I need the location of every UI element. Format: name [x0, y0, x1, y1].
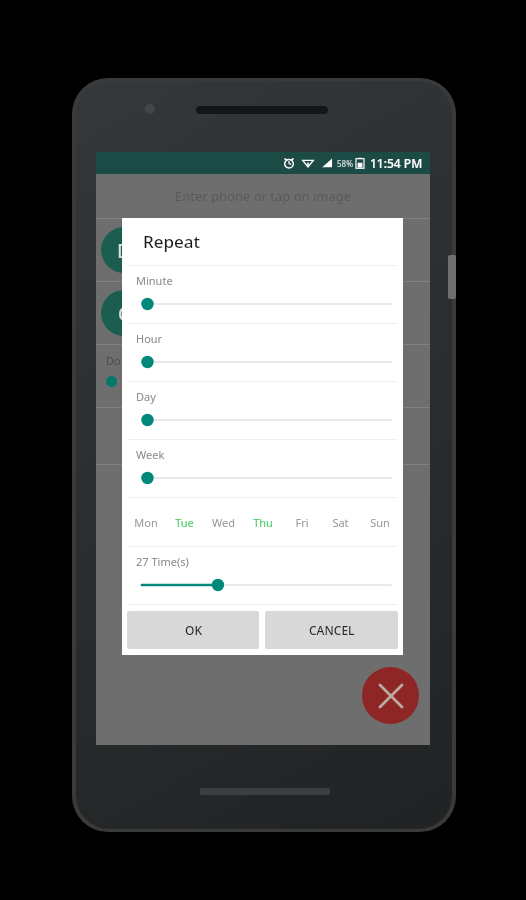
- button[interactable]: Mon: [126, 498, 165, 546]
- staticText: 27 Time(s): [136, 554, 189, 569]
- button[interactable]: [136, 295, 393, 313]
- staticText: Enter phone or tap on image: [175, 187, 352, 205]
- button[interactable]: [136, 469, 393, 487]
- button[interactable]: [136, 353, 393, 371]
- staticText: Sat: [332, 515, 349, 530]
- staticText: Wed: [212, 515, 235, 530]
- button[interactable]: Wed: [204, 498, 243, 546]
- staticText: Minute: [136, 273, 173, 288]
- staticText: Day: [136, 389, 156, 404]
- staticText: C: [118, 300, 131, 327]
- staticText: OK: [185, 622, 202, 638]
- button[interactable]: CANCEL: [265, 611, 398, 649]
- button[interactable]: OK: [127, 611, 259, 649]
- staticText: Repeat: [143, 230, 201, 253]
- button[interactable]: Tue: [165, 498, 204, 546]
- button[interactable]: Sun: [360, 498, 399, 546]
- button[interactable]: [136, 576, 393, 594]
- button[interactable]: Close: [362, 667, 419, 724]
- staticText: 11:54 PM: [370, 155, 423, 171]
- button[interactable]: Thu: [243, 498, 282, 546]
- button[interactable]: C: [96, 282, 430, 344]
- staticText: Mon: [134, 515, 158, 530]
- button[interactable]: [136, 411, 393, 429]
- staticText: CANCEL: [309, 622, 355, 638]
- staticText: Thu: [253, 515, 273, 530]
- button[interactable]: D: [96, 219, 430, 281]
- staticText: Tue: [175, 515, 194, 530]
- staticText: Hour: [136, 331, 163, 346]
- staticText: Week: [136, 447, 165, 462]
- staticText: Fri: [295, 515, 309, 530]
- button[interactable]: Sat: [321, 498, 360, 546]
- staticText: Do: [106, 353, 121, 368]
- button[interactable]: Fri: [282, 498, 321, 546]
- staticText: 58%: [337, 158, 353, 169]
- staticText: Sun: [370, 515, 390, 530]
- staticText: D: [117, 237, 132, 264]
